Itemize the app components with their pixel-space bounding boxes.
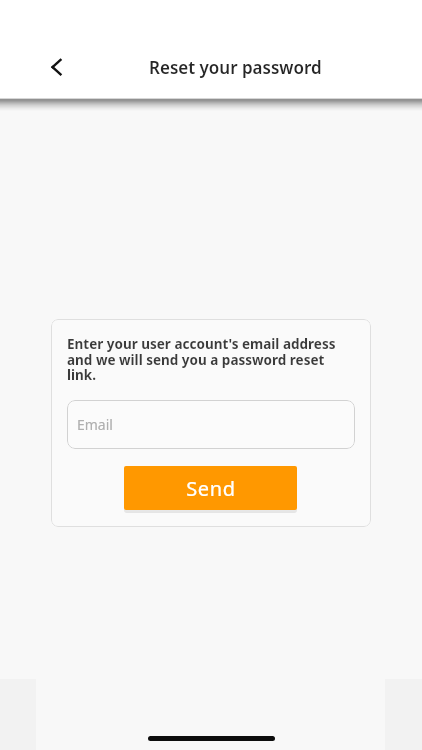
staticText: Email bbox=[77, 415, 113, 434]
button[interactable]: Back bbox=[36, 47, 78, 87]
button[interactable]: Send bbox=[124, 466, 297, 510]
staticText: Enter your user account's email address … bbox=[67, 335, 355, 384]
staticText: Send bbox=[186, 475, 236, 502]
button[interactable]: Email bbox=[67, 400, 355, 449]
staticText: Reset your password bbox=[149, 56, 322, 79]
